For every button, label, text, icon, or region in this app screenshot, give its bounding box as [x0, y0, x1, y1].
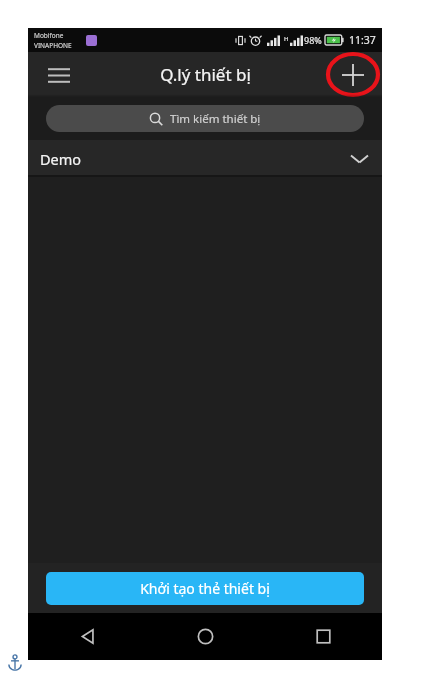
staticText: Tìm kiếm thiết bị: [170, 111, 261, 127]
button[interactable]: Menu: [38, 54, 80, 96]
staticText: Mobifone: [34, 31, 64, 40]
staticText: 98%: [304, 34, 322, 46]
staticText: Q.lý thiết bị: [160, 63, 251, 86]
staticText: VINAPHONE: [34, 41, 72, 50]
button[interactable]: Home: [146, 613, 264, 660]
staticText: 11:37: [349, 33, 376, 47]
button[interactable]: Back: [28, 613, 146, 660]
button[interactable]: Recents: [264, 613, 382, 660]
staticText: Demo: [40, 149, 82, 169]
staticText: H: [284, 35, 289, 43]
button[interactable]: Khởi tạo thẻ thiết bị: [46, 572, 364, 605]
button[interactable]: Tìm kiếm thiết bị: [46, 105, 364, 132]
button[interactable]: Add device: [332, 54, 374, 96]
button[interactable]: Demo: [28, 140, 382, 177]
staticText: Khởi tạo thẻ thiết bị: [140, 579, 270, 598]
